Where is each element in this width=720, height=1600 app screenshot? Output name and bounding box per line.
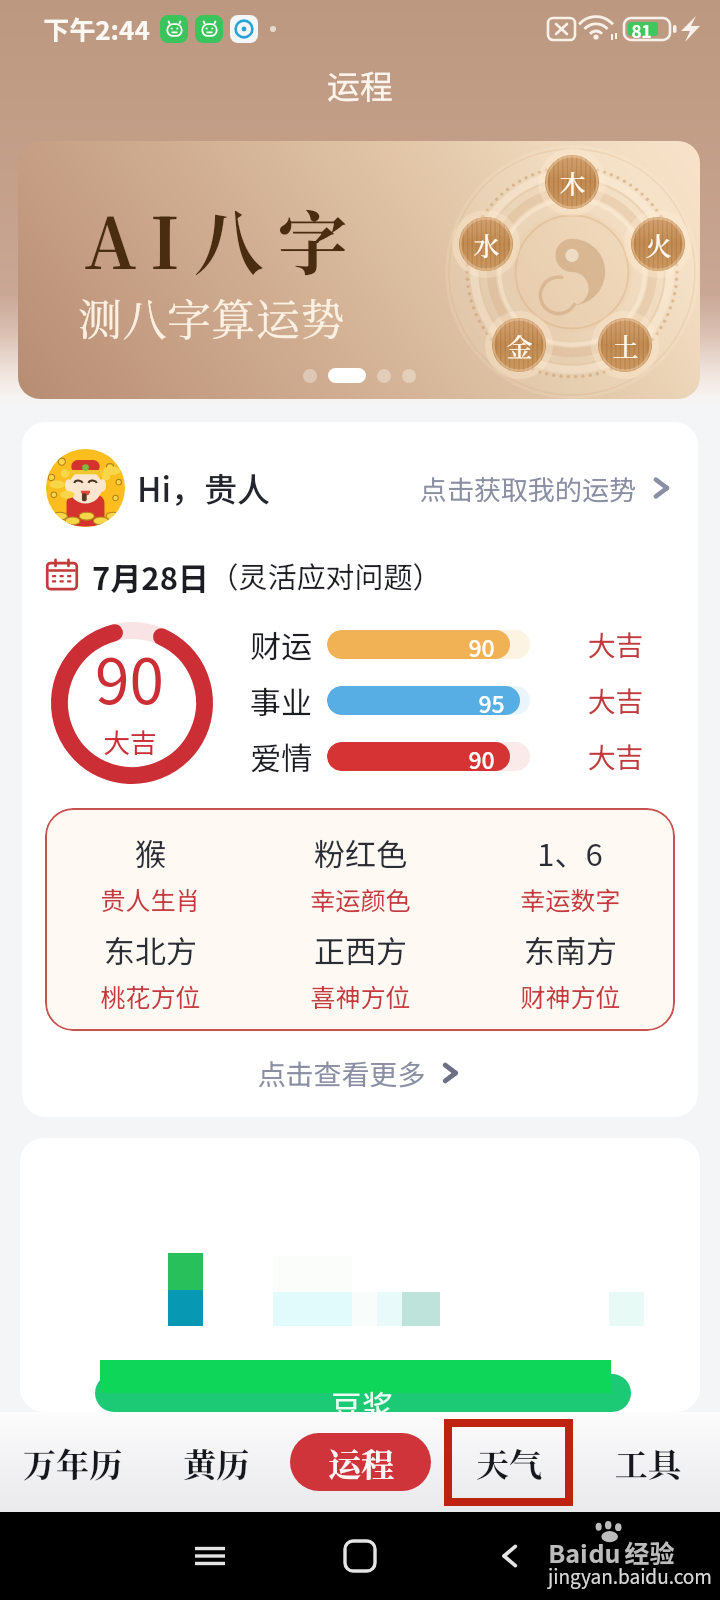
staticText: 万年历 <box>23 1439 122 1486</box>
staticText: 东南方 <box>524 927 617 972</box>
button[interactable]: Recent apps <box>180 1512 240 1600</box>
staticText: 90 <box>468 742 495 771</box>
staticText: 点击查看更多 <box>257 1053 426 1094</box>
staticText: 幸运数字 <box>520 881 621 917</box>
staticText: 财神方位 <box>520 978 621 1014</box>
button[interactable]: 运程 <box>288 1412 432 1512</box>
staticText: 81 <box>631 18 652 43</box>
button[interactable]: 豆浆 <box>20 1138 700 1412</box>
staticText: 90 <box>95 632 164 722</box>
staticText: du <box>588 1534 621 1570</box>
staticText: 猴 <box>135 830 166 875</box>
staticText: AI八字 <box>84 188 362 289</box>
staticText: 火 <box>645 226 672 263</box>
staticText: 水 <box>473 226 500 263</box>
staticText: 大吉 <box>587 624 644 665</box>
staticText: 木 <box>559 164 586 201</box>
staticText: 运程 <box>327 61 393 109</box>
staticText: 桃花方位 <box>100 978 201 1014</box>
staticText: 财运 <box>250 622 312 667</box>
staticText: 90 <box>468 630 495 659</box>
button[interactable]: 万年历 <box>0 1412 144 1512</box>
staticText: 1、6 <box>537 830 603 875</box>
staticText: 大吉 <box>587 736 644 777</box>
button[interactable]: Back <box>480 1512 540 1600</box>
staticText: 事业 <box>250 678 312 723</box>
button[interactable]: Home <box>330 1512 390 1600</box>
staticText: 7月28日 <box>92 554 209 596</box>
staticText: 喜神方位 <box>310 978 411 1014</box>
staticText: 95 <box>478 686 505 715</box>
staticText: 工具 <box>615 1439 681 1486</box>
staticText: 下午2:44 <box>43 10 150 48</box>
button[interactable]: 天气 <box>432 1412 576 1512</box>
staticText: 大吉 <box>587 680 644 721</box>
button[interactable]: 黄历 <box>144 1412 288 1512</box>
staticText: 贵人生肖 <box>100 881 201 917</box>
staticText: 粉红色 <box>314 830 407 875</box>
staticText: 土 <box>612 327 639 364</box>
staticText: 黄历 <box>183 1439 249 1486</box>
staticText: 金 <box>506 327 533 364</box>
staticText: 天气 <box>476 1439 542 1486</box>
staticText: 测八字算运势 <box>78 285 345 348</box>
staticText: 正西方 <box>314 927 407 972</box>
staticText: 幸运颜色 <box>310 881 411 917</box>
button[interactable]: 工具 <box>576 1412 720 1512</box>
button[interactable]: 点击查看更多 <box>22 1042 698 1104</box>
staticText: Hi，贵人 <box>137 464 270 512</box>
staticText: 豆浆 <box>331 1382 393 1412</box>
staticText: 东北方 <box>104 927 197 972</box>
button[interactable]: 木 <box>18 141 700 399</box>
staticText: 大吉 <box>103 722 157 761</box>
staticText: jingyan.baidu.com <box>548 1562 712 1590</box>
button[interactable]: Hi，贵人 <box>46 449 676 527</box>
staticText: 点击获取我的运势 <box>420 469 636 508</box>
staticText: 经验 <box>624 1534 675 1570</box>
staticText: （灵活应对问题） <box>209 554 442 596</box>
staticText: 爱情 <box>250 734 312 779</box>
staticText: 运程 <box>328 1439 394 1486</box>
staticText: Bai <box>548 1534 588 1570</box>
